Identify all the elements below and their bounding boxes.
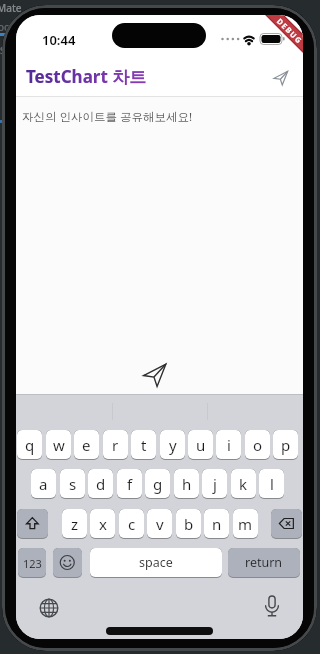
button[interactable]: return (228, 548, 300, 578)
staticText: o (253, 435, 263, 455)
button[interactable]: x (90, 509, 115, 539)
staticText: c (128, 514, 136, 534)
button[interactable]: t (131, 430, 156, 460)
button[interactable]: e (74, 430, 99, 460)
staticText: oo (0, 20, 11, 34)
staticText: TestChart 차트 (26, 65, 147, 88)
button[interactable]: g (145, 469, 170, 499)
staticText: w (53, 435, 65, 455)
staticText: f (127, 474, 133, 494)
button[interactable]: p (273, 430, 298, 460)
button[interactable] (268, 65, 294, 91)
staticText: S (0, 44, 5, 56)
button[interactable]: h (174, 469, 199, 499)
button[interactable]: space (90, 548, 222, 578)
staticText: j (213, 474, 217, 494)
staticText: x (99, 514, 107, 534)
staticText: s (69, 474, 77, 494)
button[interactable]: d (88, 469, 113, 499)
button[interactable] (53, 548, 82, 578)
staticText: h (182, 474, 192, 494)
staticText: l (270, 474, 274, 494)
staticText: 자신의 인사이트를 공유해보세요! (22, 109, 193, 125)
button[interactable] (271, 509, 302, 539)
staticText: b (184, 514, 194, 534)
staticText: m (238, 514, 253, 534)
staticText: z (71, 514, 79, 534)
button[interactable]: q (17, 430, 42, 460)
staticText: t (141, 435, 147, 455)
button[interactable]: m (233, 509, 258, 539)
button[interactable]: l (259, 469, 284, 499)
button[interactable]: f (117, 469, 142, 499)
staticText: Mate (0, 1, 22, 15)
button[interactable]: u (188, 430, 213, 460)
staticText: 10:44 (42, 31, 76, 49)
staticText: e (82, 435, 91, 455)
button[interactable]: k (231, 469, 256, 499)
staticText: q (25, 435, 35, 455)
button[interactable] (17, 509, 48, 539)
button[interactable]: o (245, 430, 270, 460)
staticText: DEBUG (275, 16, 303, 46)
button[interactable]: c (119, 509, 144, 539)
staticText: g (153, 474, 163, 494)
staticText: d (96, 474, 106, 494)
staticText: a (39, 474, 48, 494)
button[interactable]: j (202, 469, 227, 499)
staticText: k (239, 474, 248, 494)
button[interactable]: v (147, 509, 172, 539)
button[interactable]: i (216, 430, 241, 460)
staticText: y (169, 435, 177, 455)
button[interactable]: s (60, 469, 85, 499)
staticText: r (112, 435, 119, 455)
button[interactable] (138, 358, 172, 392)
staticText: v (156, 514, 164, 534)
button[interactable] (18, 548, 46, 578)
button[interactable]: b (176, 509, 201, 539)
button[interactable]: n (204, 509, 229, 539)
button[interactable]: y (160, 430, 185, 460)
button[interactable]: z (62, 509, 87, 539)
button[interactable]: r (103, 430, 128, 460)
staticText: space (139, 554, 173, 571)
staticText: p (281, 435, 291, 455)
staticText: u (196, 435, 206, 455)
button[interactable]: w (46, 430, 71, 460)
button[interactable]: a (31, 469, 56, 499)
staticText: 123 (23, 556, 42, 571)
staticText: i (227, 435, 231, 455)
staticText: return (245, 554, 283, 571)
staticText: n (212, 514, 222, 534)
